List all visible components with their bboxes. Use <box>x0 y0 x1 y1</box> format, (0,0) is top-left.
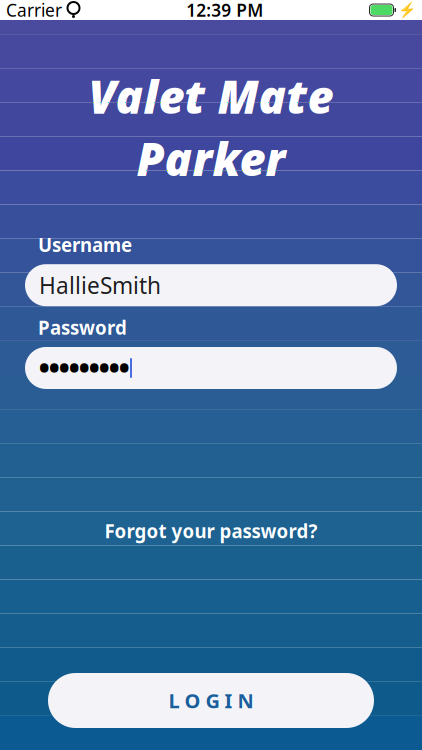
staticText: L O G I N <box>168 687 253 714</box>
staticText: ••••••••• <box>39 350 129 386</box>
staticText: Forgot your password? <box>104 519 317 543</box>
staticText: Carrier <box>6 0 62 21</box>
staticText: Password <box>38 315 127 340</box>
button[interactable]: L O G I N <box>48 673 374 728</box>
staticText: Valet Mate <box>88 66 333 126</box>
staticText: Parker <box>136 128 285 188</box>
staticText: HallieSmith <box>39 270 161 300</box>
staticText: Username <box>38 232 132 257</box>
button[interactable]: Forgot your password? <box>94 511 327 551</box>
staticText: 12:39 PM <box>186 0 263 21</box>
staticText: ⚡ <box>398 2 416 18</box>
